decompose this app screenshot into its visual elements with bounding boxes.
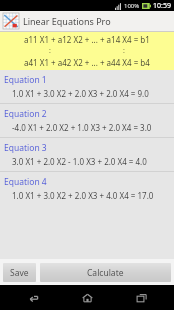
button[interactable]: Equation 4 [0, 172, 174, 205]
button[interactable]: Equation 2 [0, 104, 174, 137]
staticText: Save [10, 267, 29, 279]
staticText: Equation 2 [4, 108, 47, 120]
button[interactable]: Calculate [40, 263, 171, 282]
staticText: 100% [124, 2, 140, 10]
staticText: Calculate [87, 267, 124, 279]
staticText: a11 X1 + a12 X2 + ... + a14 X4 = b1 [24, 34, 150, 45]
staticText: 10:59 [153, 1, 171, 11]
staticText: 1.0 X1 + 3.0 X2 + 2.0 X3 + 2.0 X4 = 9.0 [12, 88, 149, 99]
button[interactable]: Back [14, 285, 54, 310]
button[interactable]: Equation 1 [0, 70, 174, 103]
button[interactable]: Home [67, 285, 107, 310]
staticText: Equation 1 [4, 74, 47, 86]
staticText: : [49, 46, 51, 56]
staticText: Equation 3 [4, 142, 47, 154]
staticText: 3.0 X1 + 2.0 X2 - 1.0 X3 + 2.0 X4 = 4.0 [12, 156, 147, 167]
button[interactable]: Equation 3 [0, 138, 174, 171]
staticText: : [123, 46, 125, 56]
staticText: Linear Equations Pro [23, 15, 111, 27]
staticText: a41 X1 + a42 X2 + ... + a44 X4 = b4 [24, 57, 150, 68]
staticText: 1.0 X1 + 3.0 X2 + 2.0 X3 + 4.0 X4 = 17.0 [12, 190, 154, 201]
staticText: Equation 4 [4, 176, 47, 188]
staticText: -4.0 X1 + 2.0 X2 + 1.0 X3 + 2.0 X4 = 3.0 [12, 122, 152, 133]
button[interactable]: Recent apps [121, 285, 161, 310]
button[interactable]: Save [3, 263, 36, 282]
